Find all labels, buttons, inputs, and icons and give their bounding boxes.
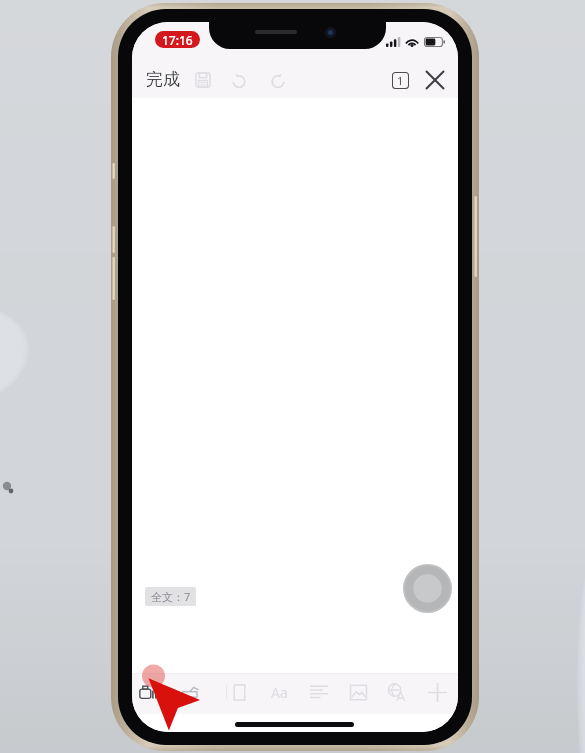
button[interactable]: Eraser [177,678,205,706]
button[interactable]: Add [423,678,451,706]
button[interactable]: Save [189,66,217,94]
button[interactable]: Translate [383,678,411,706]
button[interactable]: 17:16 [155,31,200,48]
button[interactable]: Image [344,678,372,706]
button[interactable]: 完成 [142,65,184,94]
button[interactable]: Text style [265,678,293,706]
button[interactable]: 全文：7 [145,587,196,606]
button[interactable]: Align [305,678,333,706]
staticText: Aa [271,683,288,702]
button[interactable]: Redo [264,66,292,94]
button[interactable]: Page count [385,65,415,95]
button[interactable]: Undo [225,66,253,94]
staticText: 17:16 [162,32,193,48]
staticText: 1 [397,73,404,88]
button[interactable]: Page [225,678,253,706]
button[interactable]: Close [419,64,451,96]
staticText: 完成 [146,69,180,90]
button[interactable]: Scan [135,678,163,706]
staticText: 全文：7 [151,589,191,604]
button[interactable]: Assistive touch [403,564,452,613]
